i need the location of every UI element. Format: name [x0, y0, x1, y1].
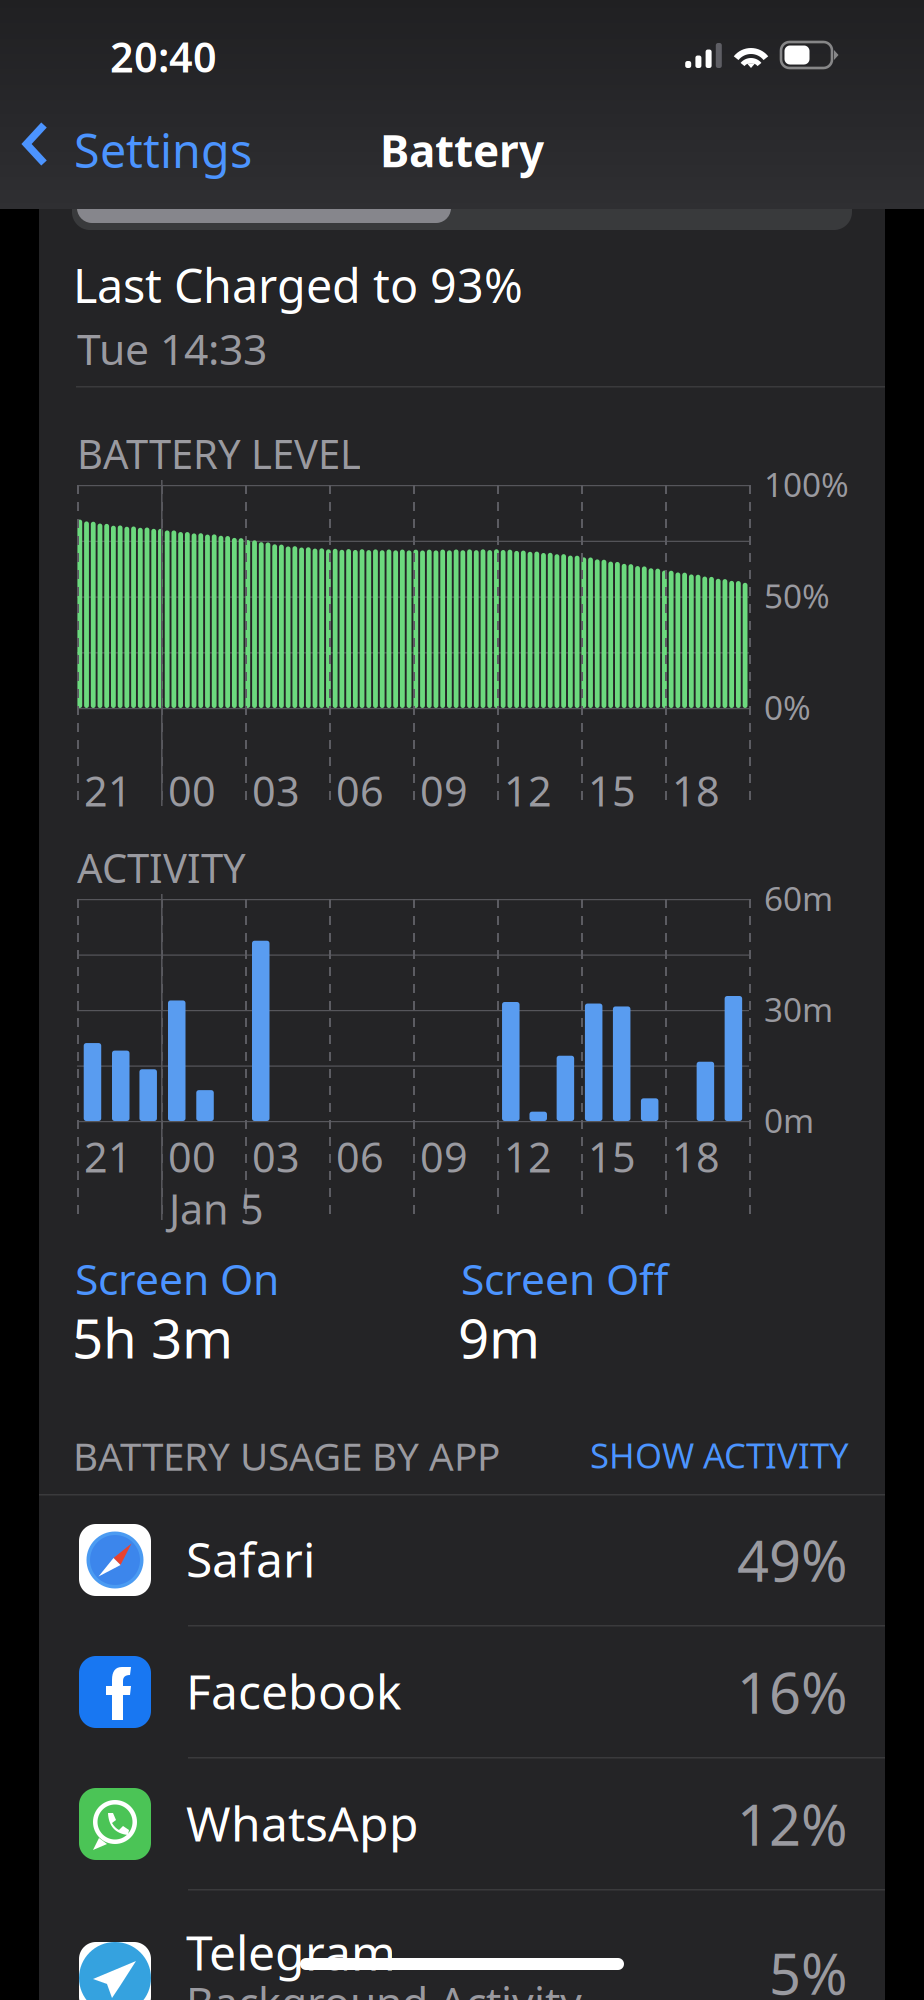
staticText: 21: [84, 763, 132, 818]
staticText: 5%: [769, 1936, 848, 2000]
button[interactable]: Facebook: [39, 1626, 885, 1758]
staticText: WhatsApp: [186, 1791, 419, 1855]
staticText: Background Activity: [186, 1973, 582, 2000]
staticText: 5h 3m: [72, 1301, 233, 1374]
staticText: 20:40: [110, 29, 217, 84]
staticText: 00: [168, 1129, 216, 1184]
staticText: 12: [504, 763, 552, 818]
staticText: Telegram: [186, 1920, 396, 1984]
staticText: 50%: [764, 573, 830, 618]
staticText: 09: [420, 1129, 468, 1184]
staticText: Screen On: [75, 1250, 279, 1307]
staticText: 09: [420, 763, 468, 818]
staticText: 60m: [764, 876, 833, 920]
staticText: SHOW ACTIVITY: [590, 1432, 849, 1478]
staticText: 12%: [737, 1787, 848, 1861]
staticText: 21: [84, 1129, 132, 1184]
staticText: 03: [252, 1129, 300, 1184]
staticText: 15: [588, 1129, 636, 1184]
staticText: 15: [588, 763, 636, 818]
button[interactable]: Screen Off: [461, 1250, 668, 1307]
staticText: 18: [672, 1129, 720, 1184]
staticText: Last Charged to 93%: [73, 254, 523, 316]
button[interactable]: WhatsApp: [39, 1758, 885, 1890]
button[interactable]: SHOW ACTIVITY: [449, 1433, 849, 1477]
staticText: 18: [672, 763, 720, 818]
staticText: Jan 5: [169, 1181, 264, 1236]
staticText: 0m: [764, 1098, 814, 1142]
staticText: 03: [252, 763, 300, 818]
staticText: 06: [336, 763, 384, 818]
staticText: 0%: [764, 685, 811, 729]
staticText: 100%: [764, 462, 849, 506]
staticText: 12: [504, 1129, 552, 1184]
staticText: Battery: [380, 121, 544, 179]
staticText: BATTERY USAGE BY APP: [73, 1430, 500, 1481]
staticText: 30m: [764, 987, 833, 1031]
staticText: Facebook: [186, 1659, 402, 1723]
staticText: 00: [168, 763, 216, 818]
staticText: 9m: [458, 1301, 540, 1374]
button[interactable]: Telegram: [39, 1890, 885, 2000]
staticText: Safari: [186, 1527, 315, 1591]
staticText: Screen Off: [461, 1250, 668, 1307]
staticText: Tue 14:33: [77, 320, 267, 377]
staticText: 06: [336, 1129, 384, 1184]
staticText: ACTIVITY: [77, 841, 246, 894]
button[interactable]: Safari: [39, 1494, 885, 1626]
button[interactable]: Screen On: [75, 1250, 279, 1307]
staticText: Settings: [74, 119, 252, 181]
staticText: 49%: [737, 1523, 848, 1597]
staticText: 16%: [737, 1655, 848, 1729]
button[interactable]: Settings: [0, 108, 265, 209]
button[interactable]: [72, 209, 852, 230]
staticText: BATTERY LEVEL: [77, 427, 361, 480]
